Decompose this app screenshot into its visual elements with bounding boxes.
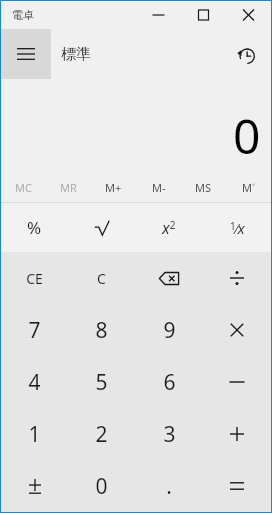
button[interactable]: 0 [68, 460, 135, 512]
button[interactable]: M˅ [226, 172, 271, 202]
staticText: 4 [28, 368, 41, 397]
staticText: 2 [95, 420, 108, 449]
button[interactable]: 8 [68, 304, 135, 356]
button[interactable]: MS [181, 172, 226, 202]
staticText: 1⁄x [230, 218, 245, 238]
button[interactable]: MC [1, 172, 46, 202]
staticText: 3 [163, 420, 176, 449]
staticText: M˅ [242, 180, 256, 195]
staticText: 標準 [61, 45, 91, 64]
button[interactable]: . [135, 460, 203, 512]
button[interactable]: 7 [1, 304, 68, 356]
button[interactable]: 2 [68, 408, 135, 460]
button[interactable]: M- [136, 172, 181, 202]
staticText: 8 [95, 316, 108, 345]
button[interactable]: 4 [1, 356, 68, 408]
staticText: 6 [163, 368, 176, 397]
staticText: . [166, 472, 172, 501]
button[interactable]: 5 [68, 356, 135, 408]
button[interactable]: C [68, 252, 135, 304]
staticText: MS [195, 180, 212, 195]
button[interactable]: History [229, 38, 263, 72]
button[interactable]: Minimize [136, 1, 181, 29]
button[interactable]: 9 [135, 304, 203, 356]
staticText: 5 [95, 368, 108, 397]
staticText: M+ [105, 180, 122, 195]
staticText: MC [15, 180, 32, 195]
staticText: 電卓 [12, 8, 34, 22]
staticText: x2 [162, 217, 176, 239]
staticText: CE [26, 269, 43, 288]
button[interactable]: Backspace [135, 252, 203, 304]
staticText: M- [152, 180, 166, 195]
button[interactable]: Divide [203, 252, 271, 304]
button[interactable]: Minus [203, 356, 271, 408]
button[interactable]: Maximize [181, 1, 226, 29]
staticText: % [27, 216, 42, 239]
button[interactable]: Menu [1, 29, 51, 79]
button[interactable]: 3 [135, 408, 203, 460]
button[interactable]: Plus minus [1, 460, 68, 512]
staticText: MR [60, 180, 77, 195]
button[interactable]: CE [1, 252, 68, 304]
button[interactable]: M+ [91, 172, 136, 202]
button[interactable]: 1 [1, 408, 68, 460]
button[interactable]: % [1, 203, 68, 252]
button[interactable]: Square root [68, 203, 135, 252]
button[interactable]: MR [46, 172, 91, 202]
button[interactable]: Equals [203, 460, 271, 512]
staticText: C [97, 269, 106, 288]
staticText: 1 [28, 420, 41, 449]
button[interactable]: 6 [135, 356, 203, 408]
staticText: 9 [163, 316, 176, 345]
button[interactable]: one over x [203, 203, 271, 252]
button[interactable]: Multiply [203, 304, 271, 356]
staticText: 0 [233, 103, 261, 168]
staticText: 7 [28, 316, 41, 345]
button[interactable]: x squared [135, 203, 203, 252]
button[interactable]: Close [226, 1, 271, 29]
button[interactable]: Plus [203, 408, 271, 460]
staticText: 0 [95, 472, 108, 501]
